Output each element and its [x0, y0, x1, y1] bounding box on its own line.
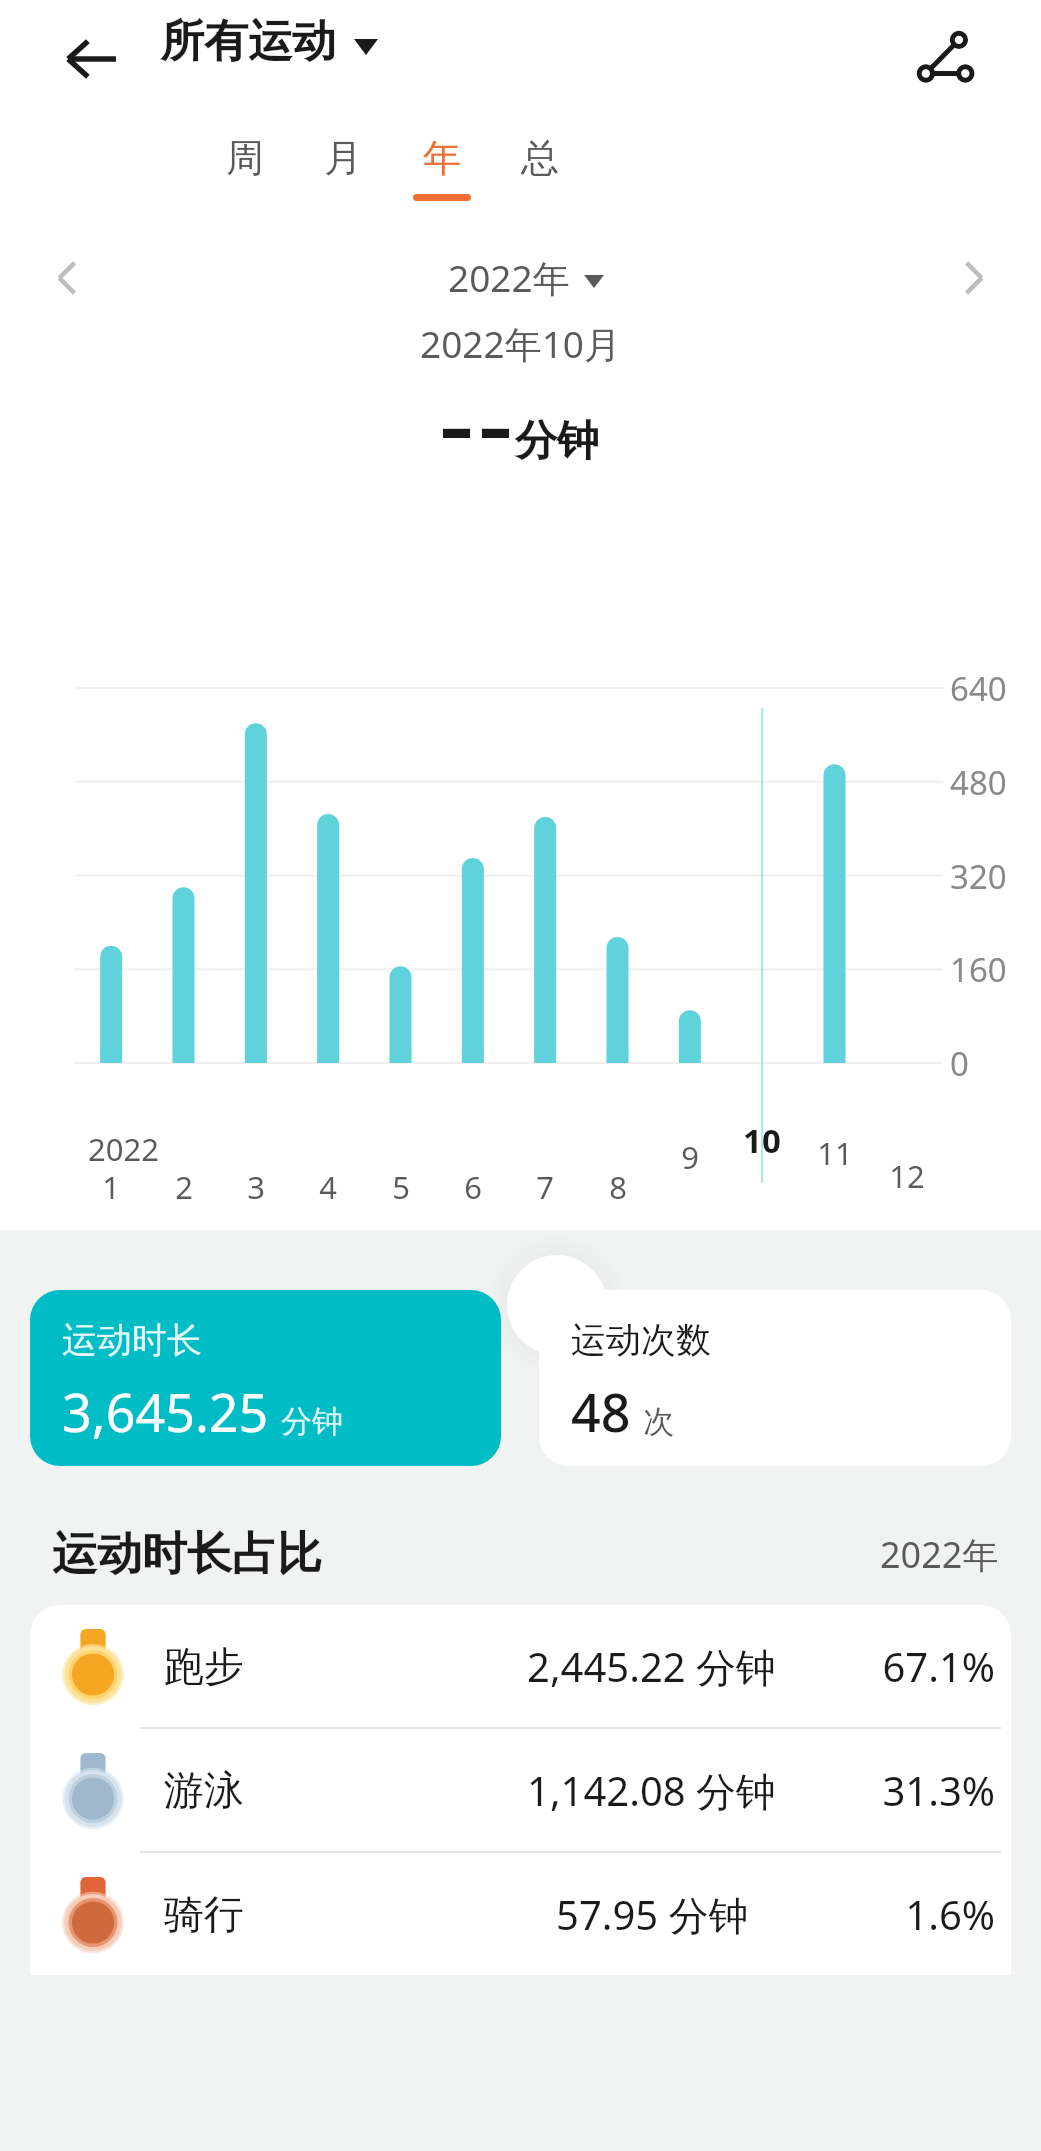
staticText: 游泳 [164, 1765, 244, 1815]
staticText: 57.95 分钟 [556, 1887, 749, 1942]
staticText: 骑行 [164, 1889, 244, 1939]
staticText: 2022年 [880, 1530, 999, 1579]
staticText: 2022年 [448, 252, 570, 303]
staticText: 运动时长占比 [52, 1526, 322, 1583]
staticText: 6 [443, 1166, 503, 1208]
button[interactable]: 跑步 [30, 1605, 1011, 1727]
button[interactable]: Share [890, 4, 1000, 114]
staticText: 1 [81, 1166, 141, 1208]
staticText: 4 [298, 1166, 358, 1208]
staticText: 2022 [88, 1128, 159, 1170]
staticText: 月 [324, 134, 362, 182]
staticText: 11 [805, 1132, 865, 1174]
button[interactable]: 总 [494, 134, 586, 230]
staticText: 48 [571, 1376, 631, 1447]
button[interactable]: Next year [925, 230, 1021, 326]
staticText: 10 [732, 1118, 792, 1163]
button[interactable]: 运动次数 [539, 1290, 1011, 1466]
staticText: 总 [521, 134, 559, 182]
staticText: 1.6% [817, 1887, 995, 1941]
staticText: 7 [515, 1166, 575, 1208]
staticText: 3 [226, 1166, 286, 1208]
staticText: 160 [950, 947, 1030, 992]
button[interactable]: 周 [199, 134, 291, 230]
button[interactable]: 骑行 [30, 1853, 1011, 1975]
staticText: 运动次数 [571, 1318, 711, 1362]
staticText: 9 [660, 1136, 720, 1178]
staticText: 5 [371, 1166, 431, 1208]
staticText: 运动时长 [62, 1318, 202, 1362]
staticText: 3,645.25 [62, 1376, 269, 1447]
staticText: 8 [588, 1166, 648, 1208]
button[interactable]: Back [36, 4, 146, 114]
staticText: 周 [226, 134, 264, 182]
staticText: 12 [877, 1155, 937, 1197]
staticText: 31.3% [817, 1763, 995, 1817]
button[interactable]: 游泳 [30, 1729, 1011, 1851]
staticText: 1,142.08 分钟 [527, 1763, 777, 1818]
staticText: 67.1% [817, 1639, 995, 1693]
staticText: 0 [950, 1041, 1030, 1086]
button[interactable]: 运动时长 [30, 1290, 501, 1466]
staticText: 2 [154, 1166, 214, 1208]
staticText: 320 [950, 854, 1030, 899]
button[interactable]: 2022年 [448, 252, 604, 303]
button[interactable]: 月 [297, 134, 389, 230]
staticText: 所有运动 [160, 14, 336, 69]
staticText: 年 [423, 134, 461, 182]
staticText: 分钟 [515, 415, 599, 468]
staticText: 跑步 [164, 1641, 244, 1691]
staticText: 次 [643, 1402, 674, 1441]
button[interactable]: Previous year [20, 230, 116, 326]
button[interactable]: 所有运动 [160, 14, 378, 69]
staticText: 640 [950, 666, 1030, 711]
staticText: 2,445.22 分钟 [527, 1639, 777, 1694]
button[interactable]: 年 [396, 134, 488, 230]
staticText: 480 [950, 760, 1030, 805]
staticText: 2022年10月 [420, 318, 621, 369]
staticText: 分钟 [281, 1402, 343, 1441]
